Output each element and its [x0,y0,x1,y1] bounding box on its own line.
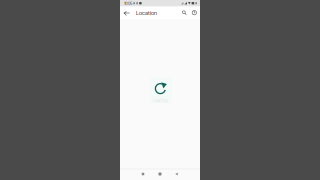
staticText: 10:05 [124,1,132,6]
staticText: Location [136,9,157,16]
staticText: Loading [153,98,168,103]
button[interactable]: Back [121,7,132,19]
button[interactable]: Help [189,7,199,19]
button[interactable]: Search [179,7,189,19]
